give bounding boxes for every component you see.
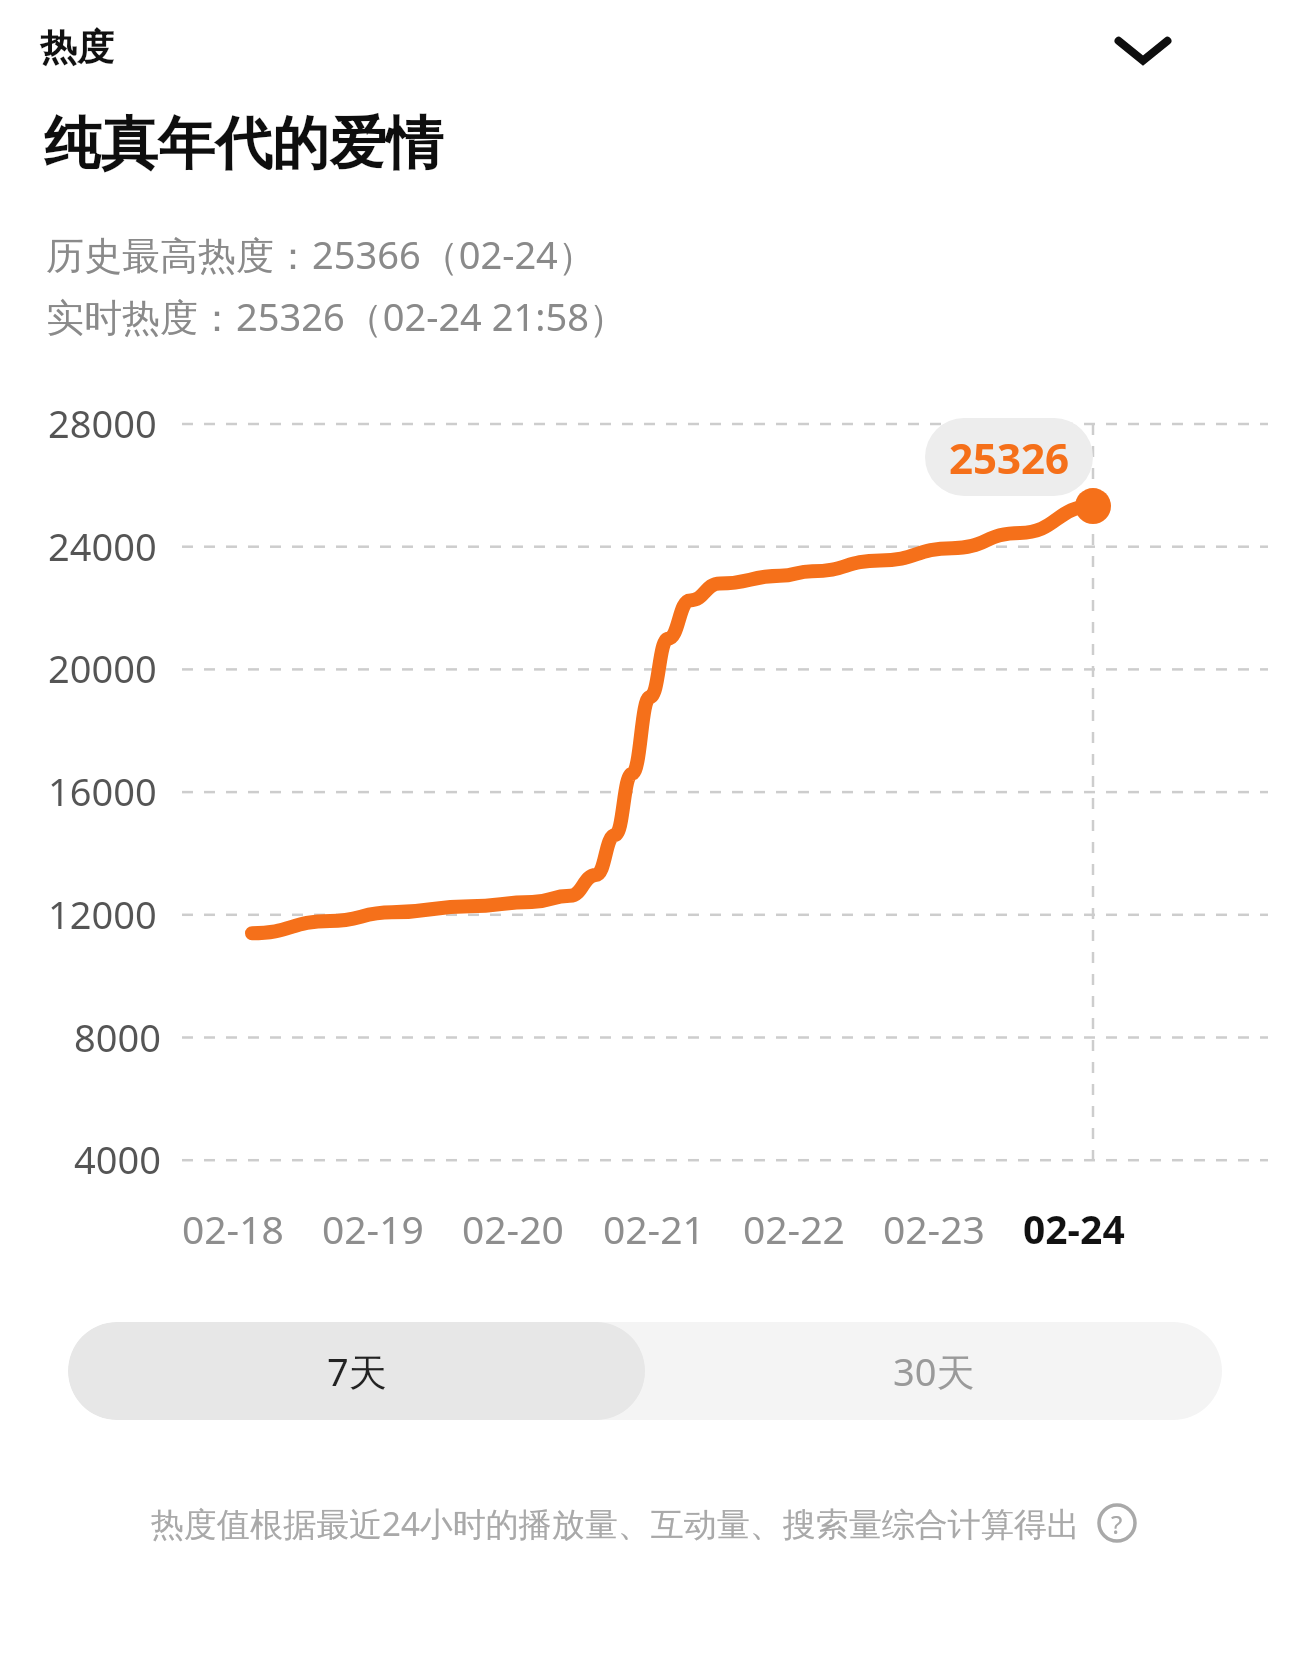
staticText: 02-22 bbox=[743, 1202, 845, 1255]
button[interactable]: Collapse bbox=[1098, 4, 1188, 94]
staticText: 热度 bbox=[40, 24, 114, 71]
staticText: 8000 bbox=[74, 1011, 161, 1063]
staticText: 实时热度：25326（02-24 21:58） bbox=[46, 290, 627, 342]
staticText: 纯真年代的爱情 bbox=[44, 108, 443, 180]
staticText: 历史最高热度：25366（02-24） bbox=[46, 228, 596, 280]
staticText: ? bbox=[1111, 1506, 1123, 1541]
staticText: 02-21 bbox=[603, 1202, 705, 1255]
staticText: 02-18 bbox=[182, 1202, 284, 1255]
button[interactable]: Help bbox=[1094, 1500, 1140, 1546]
staticText: 20000 bbox=[48, 642, 157, 694]
staticText: 24000 bbox=[48, 520, 157, 572]
staticText: 热度值根据最近24小时的播放量、互动量、搜索量综合计算得出 bbox=[151, 1501, 1080, 1546]
button[interactable]: 7天 bbox=[68, 1322, 645, 1420]
staticText: 02-20 bbox=[462, 1202, 564, 1255]
staticText: 4000 bbox=[74, 1133, 161, 1185]
staticText: 02-19 bbox=[322, 1202, 424, 1255]
staticText: 02-23 bbox=[883, 1202, 985, 1255]
staticText: 12000 bbox=[48, 888, 157, 940]
staticText: 16000 bbox=[48, 765, 157, 817]
staticText: 30天 bbox=[893, 1345, 975, 1397]
staticText: 02-24 bbox=[1023, 1202, 1125, 1255]
staticText: 25326 bbox=[949, 429, 1070, 486]
staticText: 7天 bbox=[327, 1345, 387, 1397]
staticText: 28000 bbox=[48, 397, 157, 449]
button[interactable]: 30天 bbox=[645, 1322, 1222, 1420]
